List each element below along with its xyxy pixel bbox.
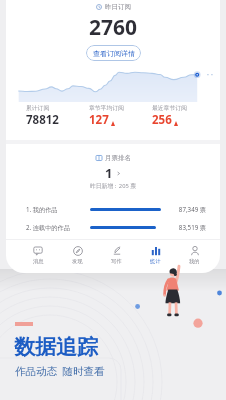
staticText: 256 [152,112,172,128]
button[interactable]: 1 [6,164,220,182]
staticText: 2760 [6,13,220,42]
button[interactable]: 写作 [97,240,136,270]
staticText: 我的 [189,258,200,265]
staticText: 数据追踪 [14,334,98,360]
staticText: 127 [89,112,109,128]
staticText: 87,349 票 [160,205,206,213]
staticText: 1. 我的作品 [26,205,58,213]
button[interactable]: 查看订阅详情 [86,45,141,61]
staticText: 累计订阅 [26,104,50,111]
button[interactable]: 统计 [136,240,175,270]
staticText: 2. 连载中的作品 [26,223,70,231]
staticText: 78812 [26,112,59,128]
staticText: 写作 [111,258,122,265]
staticText: 最近章节订阅 [152,104,187,111]
button[interactable]: 我的 [175,240,214,270]
button[interactable]: 发现 [58,240,97,270]
staticText: 查看订阅详情 [93,49,135,58]
staticText: 1 [105,164,113,182]
staticText: 83,519 票 [160,223,206,231]
staticText: 统计 [150,258,161,265]
staticText: 消息 [33,258,44,265]
staticText: 昨日订阅 [105,3,131,11]
staticText: 发现 [72,258,83,265]
staticText: 作品动态 随时查看 [15,364,105,378]
staticText: 昨日新增：205 票 [6,182,220,190]
staticText: 月票排名 [105,154,131,162]
staticText: 章节平均订阅 [89,104,124,111]
button[interactable]: 消息 [18,240,58,270]
